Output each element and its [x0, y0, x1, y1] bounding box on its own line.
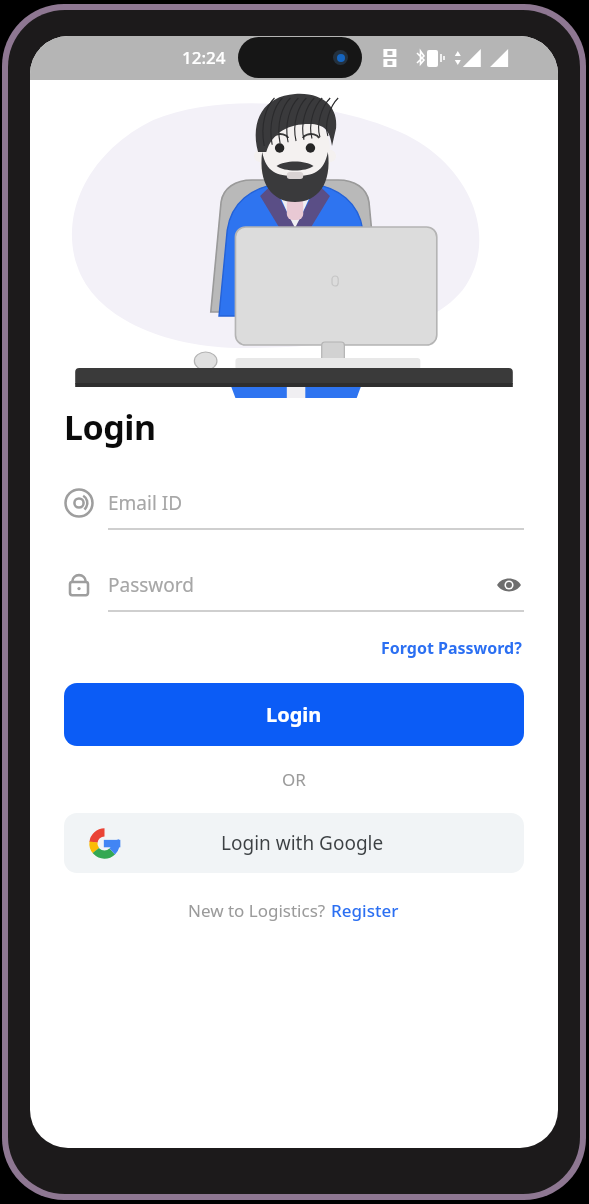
staticText: Password: [108, 572, 194, 598]
button[interactable]: Email ID: [64, 488, 524, 530]
button[interactable]: Forgot Password?: [379, 634, 524, 662]
staticText: Register: [331, 899, 399, 922]
staticText: Forgot Password?: [381, 637, 522, 659]
button[interactable]: Login: [64, 683, 524, 746]
button[interactable]: Register: [330, 897, 400, 924]
staticText: Login: [266, 701, 322, 728]
staticText: OR: [282, 768, 306, 791]
staticText: Login with Google: [221, 830, 384, 856]
button[interactable]: Password: [64, 570, 524, 612]
staticText: Email ID: [108, 490, 183, 516]
button[interactable]: Login with Google: [64, 813, 524, 873]
staticText: 12:24: [182, 46, 226, 69]
staticText: New to Logistics?: [188, 899, 330, 922]
staticText: Login: [64, 404, 156, 450]
button[interactable]: Show password: [494, 570, 524, 600]
